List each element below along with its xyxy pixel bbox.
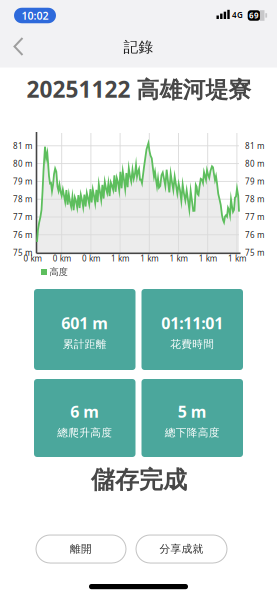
staticText: 1 km	[111, 253, 129, 264]
staticText: 77 m	[245, 212, 264, 222]
staticText: 4G	[232, 10, 243, 20]
staticText: 1 km	[140, 253, 158, 264]
staticText: 總下降高度	[165, 426, 220, 439]
staticText: 78 m	[13, 194, 32, 204]
staticText: 0 km	[53, 253, 71, 264]
staticText: 離開	[70, 542, 92, 555]
staticText: 20251122 高雄河堤寮	[26, 74, 251, 104]
staticText: 分享成就	[159, 542, 203, 555]
staticText: 1 km	[228, 253, 246, 264]
button[interactable]: 分享成就	[136, 535, 227, 563]
button[interactable]: 10:02	[14, 8, 56, 23]
staticText: 6 m	[70, 401, 99, 422]
staticText: 80 m	[245, 158, 264, 169]
staticText: 10:02	[21, 8, 48, 23]
staticText: 78 m	[245, 194, 264, 204]
staticText: 1 km	[199, 253, 217, 264]
staticText: 總爬升高度	[57, 426, 112, 439]
staticText: 75 m	[13, 247, 32, 258]
staticText: 0 km	[23, 253, 41, 264]
staticText: 76 m	[13, 229, 32, 240]
staticText: 儲存完成	[91, 465, 187, 495]
staticText: 79 m	[13, 176, 32, 187]
staticText: 01:11:01	[161, 312, 223, 333]
staticText: 累計距離	[63, 338, 107, 351]
staticText: 81 m	[13, 140, 32, 151]
staticText: 77 m	[13, 212, 32, 222]
button[interactable]: Back	[0, 31, 36, 62]
staticText: 1 km	[169, 253, 187, 264]
staticText: 80 m	[13, 158, 32, 169]
staticText: 花費時間	[170, 338, 214, 351]
button[interactable]: 離開	[36, 535, 126, 563]
staticText: 601 m	[61, 312, 108, 333]
staticText: 69	[249, 10, 259, 21]
staticText: 76 m	[245, 229, 264, 240]
staticText: 0 km	[82, 253, 100, 264]
staticText: 5 m	[178, 401, 207, 422]
staticText: 記錄	[123, 38, 153, 56]
staticText: 79 m	[245, 176, 264, 187]
staticText: 高度	[49, 266, 67, 278]
staticText: 75 m	[245, 247, 264, 258]
staticText: 81 m	[245, 140, 264, 151]
